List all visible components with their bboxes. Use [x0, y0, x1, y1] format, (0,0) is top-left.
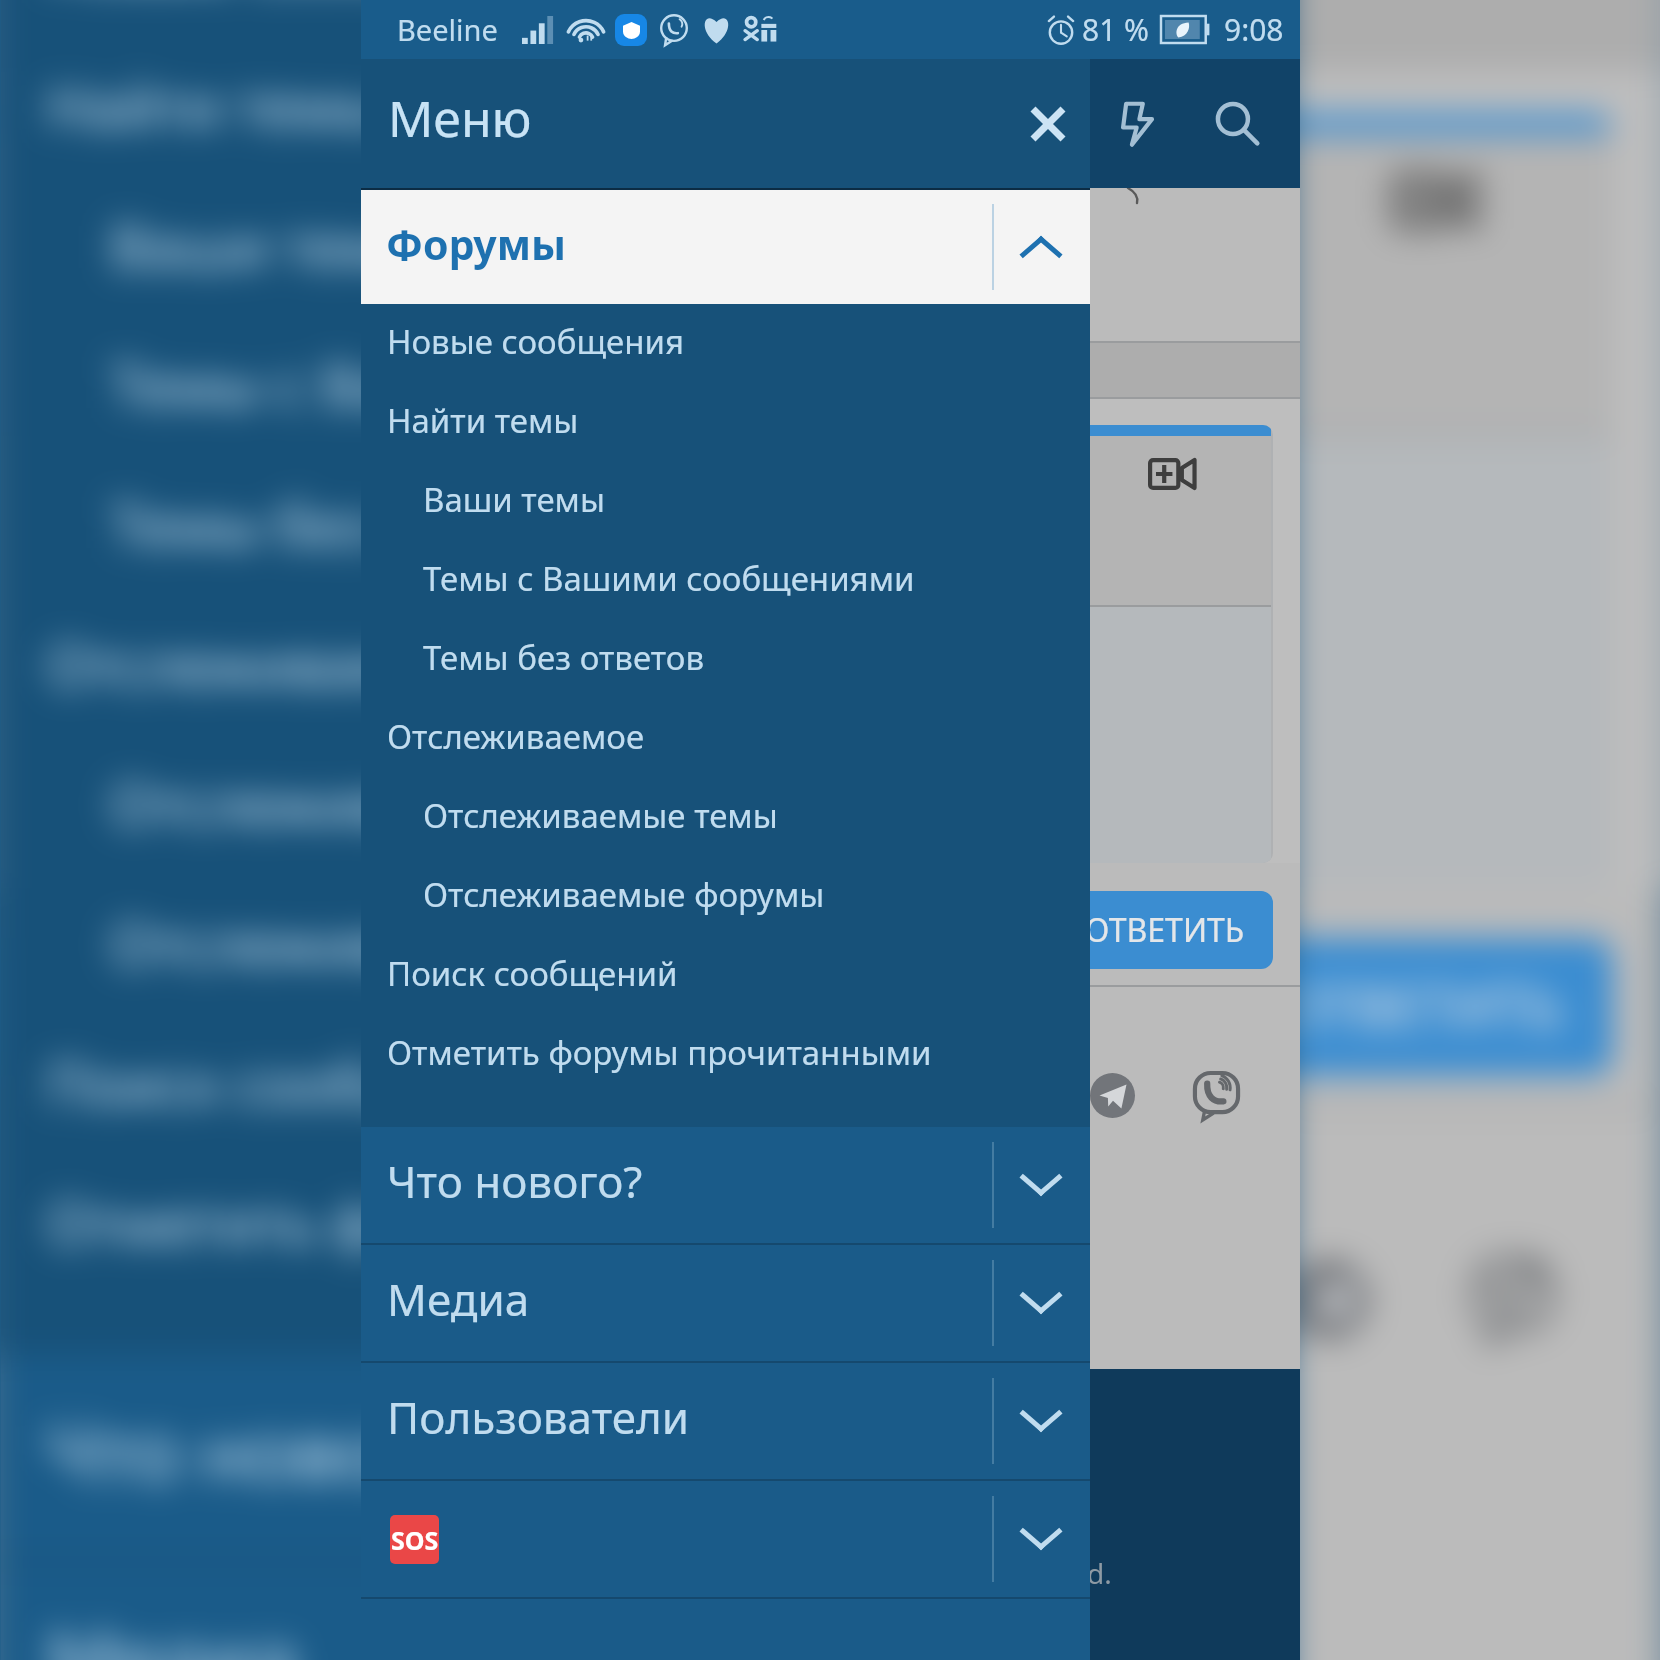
staticText: Отметить форумы прочитанными	[387, 1030, 932, 1075]
staticText: Новые сообщения	[46, 0, 571, 6]
button[interactable]: Пользователи	[361, 1363, 1090, 1479]
staticText: Отслеживаемые темы	[110, 765, 738, 844]
button[interactable]: Что нового?	[361, 1127, 1090, 1243]
button[interactable]: Insert video	[1148, 458, 1195, 490]
button[interactable]: Отслеживаемое	[361, 699, 1090, 778]
staticText: Пользователи	[387, 1387, 690, 1447]
button[interactable]: Search	[1187, 71, 1289, 176]
staticText: SOS	[391, 1523, 439, 1557]
staticText: Отслеживаемое	[46, 625, 502, 704]
button[interactable]: Отслеживаемые форумы	[361, 857, 1090, 936]
staticText: Отслеживаемые темы	[423, 793, 778, 838]
staticText: Отслеживаемое	[387, 714, 645, 759]
staticText: Найти темы	[387, 398, 579, 443]
staticText: ОТВЕТИТЬ	[1280, 968, 1563, 1046]
staticText: Темы с Вашими сообщениями	[110, 346, 980, 425]
button[interactable]: Отслеживаемые темы	[361, 778, 1090, 857]
staticText: Ваши темы	[423, 477, 605, 522]
staticText: Медиа	[46, 1606, 299, 1660]
button[interactable]: Ваши темы	[361, 462, 1090, 541]
staticText: Beeline	[397, 10, 498, 49]
button[interactable]: Share on Telegram	[1090, 1073, 1135, 1118]
button[interactable]: Share on Viber	[1192, 1071, 1241, 1120]
button[interactable]: ОТВЕТИТЬ	[361, 891, 1273, 969]
staticText: Отслеживаемые форумы	[110, 904, 821, 984]
staticText: d.	[1087, 1554, 1112, 1592]
button[interactable]: Новые сообщения	[361, 304, 1090, 383]
staticText: Меню	[388, 84, 532, 152]
staticText: 81 %	[1082, 9, 1150, 50]
staticText: Что нового?	[387, 1151, 643, 1211]
staticText: 9:08	[1224, 9, 1284, 50]
button[interactable]: Форумы	[361, 190, 1090, 304]
staticText: Новые сообщения	[387, 319, 684, 364]
button[interactable]: Отметить форумы прочитанными	[361, 1015, 1090, 1094]
staticText: Найти темы	[46, 66, 386, 146]
button[interactable]: Поиск сообщений	[361, 936, 1090, 1015]
staticText: Отметить форумы прочитанными	[46, 1184, 1010, 1263]
staticText: Форумы	[386, 216, 566, 272]
button[interactable]: Close menu	[1006, 71, 1090, 176]
button[interactable]: Темы с Вашими сообщениями	[361, 541, 1090, 620]
staticText: Поиск сообщений	[387, 951, 678, 996]
staticText: Темы с Вашими сообщениями	[423, 556, 915, 601]
staticText: ОТВЕТИТЬ	[1085, 908, 1245, 952]
button[interactable]: Найти темы	[361, 383, 1090, 462]
staticText: Отслеживаемые форумы	[423, 872, 825, 917]
button[interactable]: Медиа	[361, 1245, 1090, 1361]
button[interactable]: SOS	[361, 1481, 1090, 1597]
button[interactable]: Quick navigation	[1085, 71, 1187, 176]
button[interactable]: Темы без ответов	[361, 620, 1090, 699]
staticText: Темы без ответов	[110, 485, 609, 565]
staticText: Поиск сообщений	[46, 1044, 561, 1123]
staticText: Темы без ответов	[423, 635, 705, 680]
staticText: Медиа	[387, 1269, 530, 1329]
staticText: Ваши темы	[110, 206, 432, 285]
staticText: Что нового?	[46, 1397, 499, 1504]
